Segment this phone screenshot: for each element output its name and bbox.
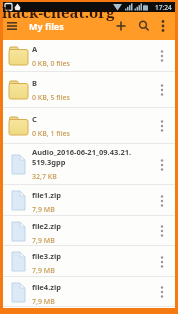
staticText: 7,9 MB: [32, 205, 55, 215]
staticText: 0 KB, 1 files: [32, 129, 71, 139]
button[interactable]: file3.zip: [3, 246, 175, 277]
staticText: file4.zip: [32, 282, 61, 292]
button[interactable]: A: [3, 40, 175, 72]
staticText: 0 KB, 0 files: [32, 59, 71, 69]
staticText: 32,7 KB: [32, 172, 57, 182]
staticText: 7,9 MB: [32, 266, 55, 276]
staticText: 7,9 MB: [32, 297, 55, 307]
button[interactable]: file4.zip: [3, 277, 175, 307]
button[interactable]: C: [3, 108, 175, 144]
button[interactable]: B: [3, 72, 175, 108]
button[interactable]: [157, 19, 169, 33]
staticText: hack-cheat.org: [2, 2, 115, 22]
staticText: file3.zip: [32, 251, 61, 261]
staticText: 7,9 MB: [32, 236, 55, 246]
staticText: My files: [29, 20, 64, 32]
button[interactable]: [137, 19, 151, 33]
staticText: file2.zip: [32, 221, 61, 231]
staticText: 519.3gpp: [32, 157, 66, 167]
button[interactable]: file1.zip: [3, 185, 175, 216]
button[interactable]: [114, 19, 128, 33]
staticText: 0 KB, 5 files: [32, 93, 71, 103]
staticText: C: [32, 114, 37, 124]
staticText: B: [32, 78, 37, 88]
staticText: A: [32, 44, 38, 54]
button[interactable]: [7, 22, 17, 31]
button[interactable]: file2.zip: [3, 216, 175, 246]
button[interactable]: Audio_2016-06-21_09.43.21.: [3, 144, 175, 185]
staticText: file1.zip: [32, 190, 61, 200]
staticText: 17:24: [155, 3, 172, 12]
staticText: Audio_2016-06-21_09.43.21.: [32, 147, 132, 157]
